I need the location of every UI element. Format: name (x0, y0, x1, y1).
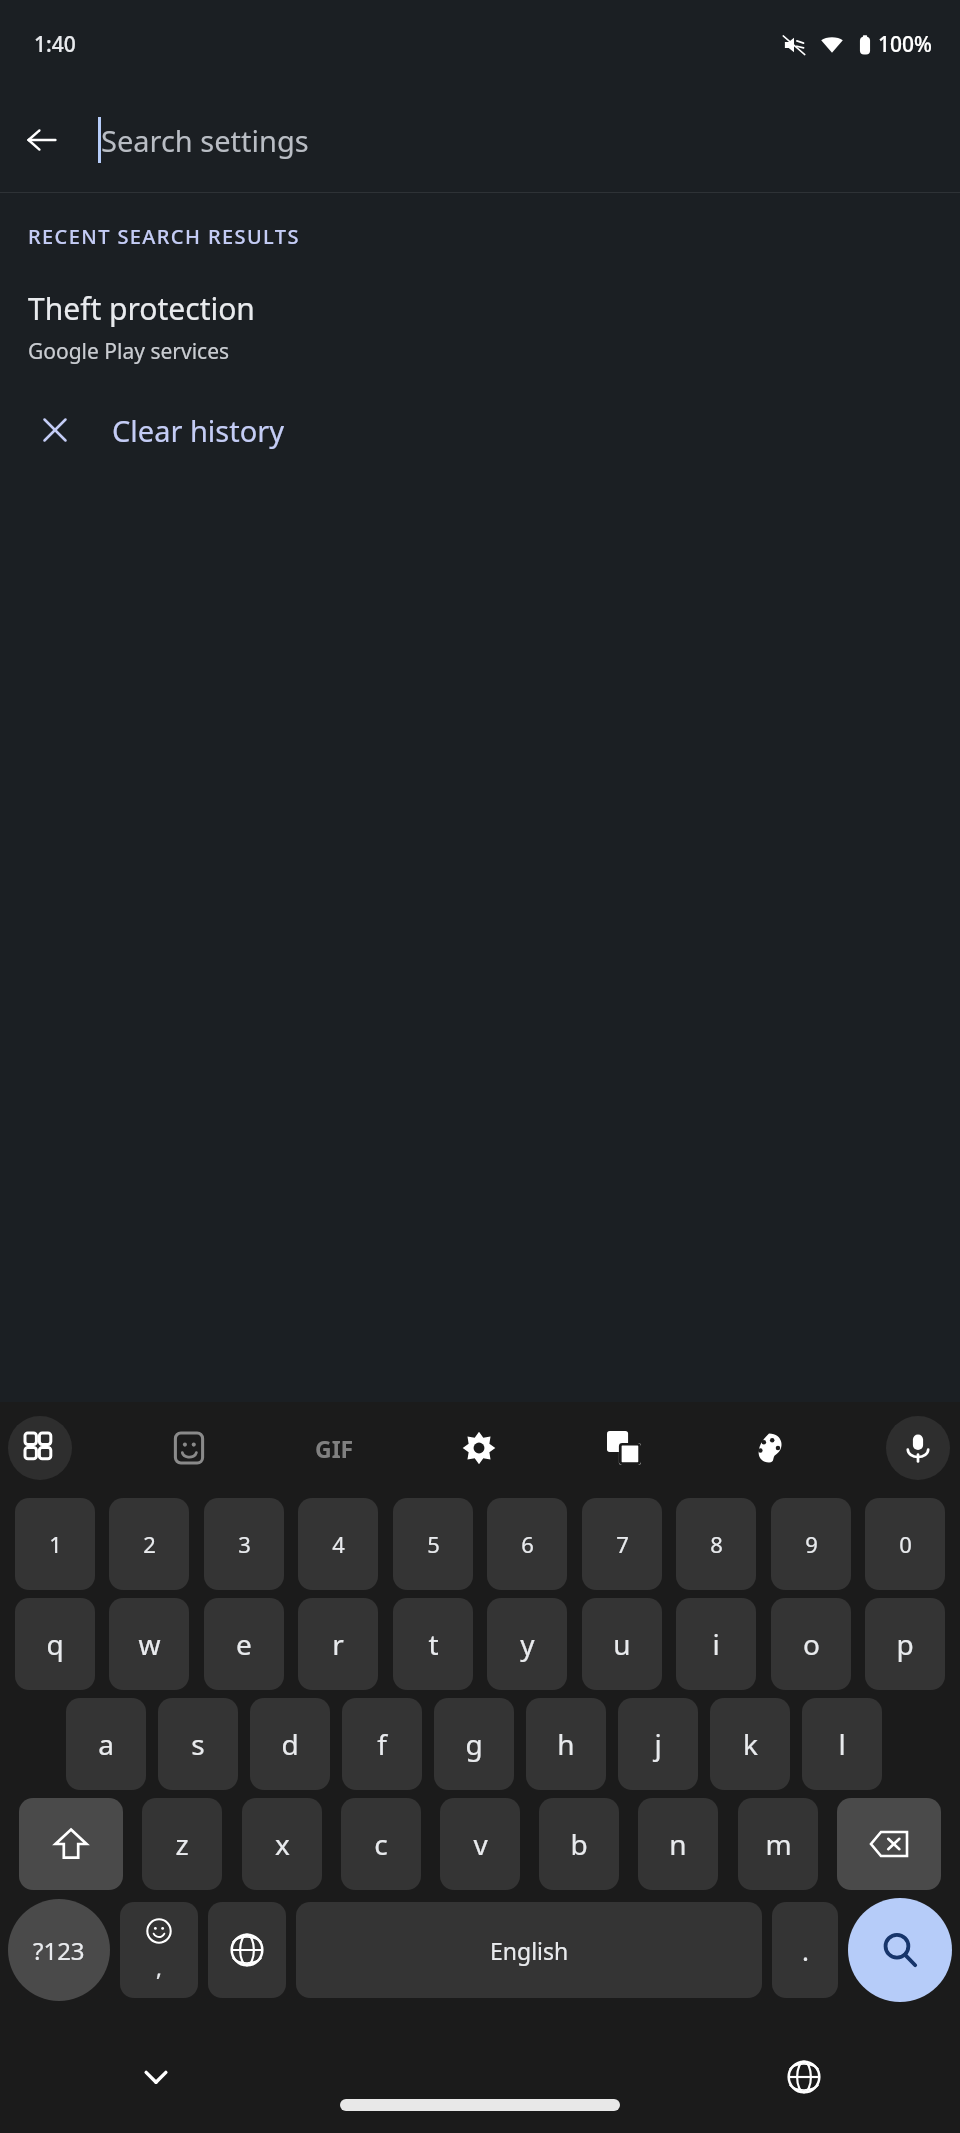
staticText: w (138, 1625, 161, 1663)
button[interactable]: 6 (487, 1498, 567, 1590)
button[interactable]: . (772, 1902, 838, 1998)
staticText: English (490, 1935, 569, 1966)
button[interactable]: 0 (865, 1498, 945, 1590)
staticText: 4 (332, 1529, 345, 1559)
staticText: i (712, 1625, 720, 1663)
button[interactable]: x (242, 1798, 322, 1890)
button[interactable]: z (142, 1798, 222, 1890)
button[interactable]: Hide keyboard (130, 2051, 182, 2103)
staticText: . (802, 1933, 809, 1968)
staticText: 100% (878, 30, 932, 59)
button[interactable]: d (250, 1698, 330, 1790)
staticText: 9 (805, 1529, 818, 1559)
button[interactable]: g (434, 1698, 514, 1790)
staticText: d (281, 1725, 299, 1763)
staticText: 0 (899, 1529, 912, 1559)
staticText: z (175, 1825, 189, 1863)
button[interactable]: o (771, 1598, 851, 1690)
button[interactable]: e (204, 1598, 284, 1690)
button[interactable]: 7 (582, 1498, 662, 1590)
staticText: 2 (143, 1529, 156, 1559)
button[interactable]: Search (848, 1898, 952, 2002)
staticText: u (613, 1625, 631, 1663)
staticText: h (557, 1725, 575, 1763)
staticText: 7 (616, 1529, 629, 1559)
staticText: r (332, 1625, 344, 1663)
staticText: v (473, 1825, 488, 1863)
button[interactable]: Emoji (120, 1902, 198, 1998)
button[interactable]: s (158, 1698, 238, 1790)
button[interactable]: r (298, 1598, 378, 1690)
staticText: f (377, 1725, 387, 1763)
button[interactable]: Stickers (161, 1420, 217, 1476)
staticText: m (765, 1825, 792, 1863)
staticText: 1 (49, 1529, 62, 1559)
button[interactable]: i (676, 1598, 756, 1690)
staticText: g (465, 1725, 483, 1763)
button[interactable]: w (109, 1598, 189, 1690)
button[interactable]: y (487, 1598, 567, 1690)
staticText: , (156, 1952, 162, 1982)
button[interactable]: h (526, 1698, 606, 1790)
button[interactable]: Home (340, 2099, 620, 2111)
button[interactable]: t (393, 1598, 473, 1690)
button[interactable]: k (710, 1698, 790, 1790)
staticText: RECENT SEARCH RESULTS (28, 223, 300, 250)
staticText: Theft protection (28, 288, 255, 329)
button[interactable]: Clear history (0, 394, 960, 466)
button[interactable]: ?123 (8, 1899, 110, 2001)
button[interactable]: Change language (208, 1902, 286, 1998)
staticText: n (669, 1825, 687, 1863)
staticText: 5 (427, 1529, 440, 1559)
button[interactable]: GIF (306, 1420, 362, 1476)
staticText: x (275, 1825, 290, 1863)
staticText: k (743, 1725, 758, 1763)
staticText: j (654, 1725, 662, 1763)
button[interactable]: 8 (676, 1498, 756, 1590)
staticText: c (374, 1825, 388, 1863)
button[interactable]: English (296, 1902, 762, 1998)
staticText: GIF (315, 1433, 354, 1464)
button[interactable]: 5 (393, 1498, 473, 1590)
staticText: s (191, 1725, 205, 1763)
button[interactable]: b (539, 1798, 619, 1890)
button[interactable]: Theft protection (0, 288, 960, 366)
staticText: Search settings (101, 121, 309, 160)
button[interactable]: v (440, 1798, 520, 1890)
button[interactable]: 4 (298, 1498, 378, 1590)
button[interactable]: Themes (741, 1420, 797, 1476)
button[interactable]: 9 (771, 1498, 851, 1590)
button[interactable]: 2 (109, 1498, 189, 1590)
staticText: 3 (238, 1529, 251, 1559)
button[interactable]: Switch input method (778, 2051, 830, 2103)
staticText: e (236, 1625, 252, 1663)
button[interactable]: Backspace (837, 1798, 941, 1890)
staticText: 1:40 (34, 30, 76, 59)
button[interactable]: Voice input (886, 1416, 950, 1480)
staticText: 8 (710, 1529, 723, 1559)
button[interactable]: Search settings (98, 117, 960, 163)
staticText: ?123 (33, 1934, 85, 1967)
staticText: a (98, 1725, 114, 1763)
staticText: Google Play services (28, 337, 230, 366)
button[interactable]: Shift (19, 1798, 123, 1890)
button[interactable]: Clipboard (8, 1416, 72, 1480)
staticText: b (570, 1825, 588, 1863)
button[interactable]: n (638, 1798, 718, 1890)
button[interactable]: 3 (204, 1498, 284, 1590)
button[interactable]: f (342, 1698, 422, 1790)
button[interactable]: Back (10, 108, 74, 172)
button[interactable]: j (618, 1698, 698, 1790)
button[interactable]: c (341, 1798, 421, 1890)
staticText: l (838, 1725, 846, 1763)
button[interactable]: q (15, 1598, 95, 1690)
staticText: y (520, 1625, 535, 1663)
button[interactable]: l (802, 1698, 882, 1790)
button[interactable]: m (738, 1798, 818, 1890)
button[interactable]: p (865, 1598, 945, 1690)
button[interactable]: 1 (15, 1498, 95, 1590)
button[interactable]: Settings (451, 1420, 507, 1476)
button[interactable]: a (66, 1698, 146, 1790)
button[interactable]: Translate (596, 1420, 652, 1476)
button[interactable]: u (582, 1598, 662, 1690)
